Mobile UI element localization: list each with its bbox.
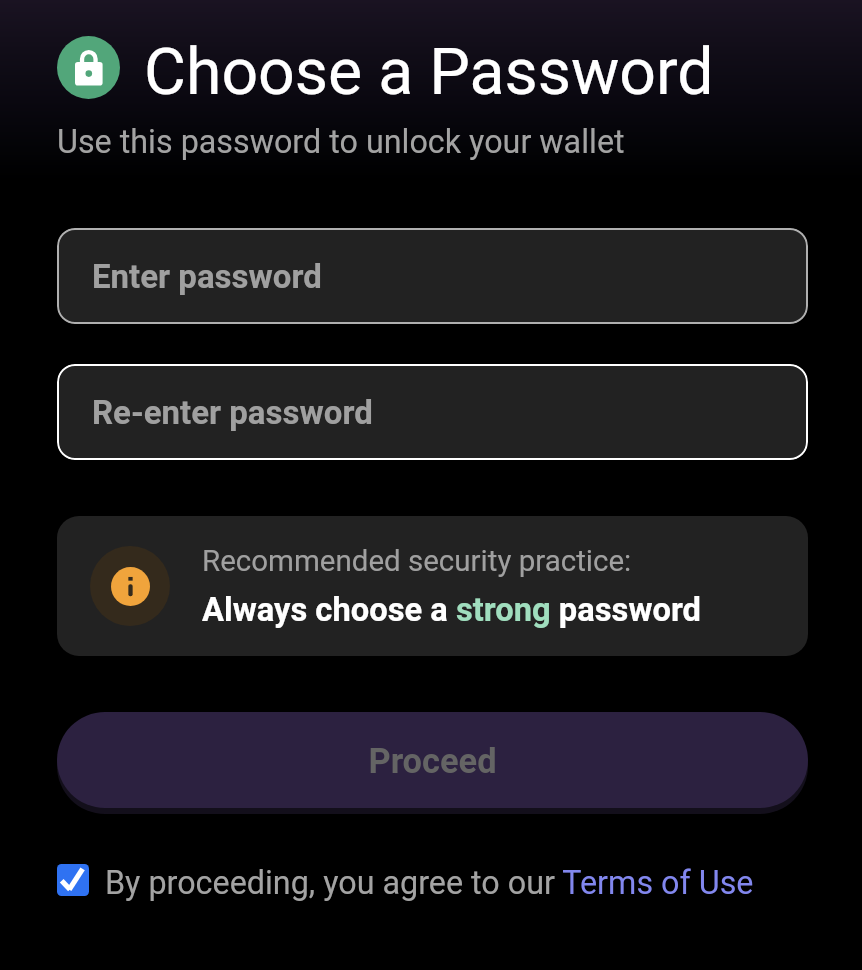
button[interactable]: Proceed [57,712,808,808]
staticText: Use this password to unlock your wallet [57,123,625,161]
staticText: Proceed [368,741,497,781]
staticText: Re-enter password [92,393,373,432]
button[interactable]: Re-enter password [57,364,808,460]
button[interactable]: By proceeding, you agree to our Terms of… [105,864,754,902]
staticText: Always choose a strong password [202,591,701,629]
button[interactable]: Enter password [57,228,808,324]
staticText: Enter password [92,257,322,296]
staticText: Recommended security practice: [202,544,632,579]
button[interactable]: Agree to Terms of Use [57,864,89,896]
button[interactable]: Recommended security practice: [57,516,808,656]
staticText: Choose a Password [144,34,714,109]
